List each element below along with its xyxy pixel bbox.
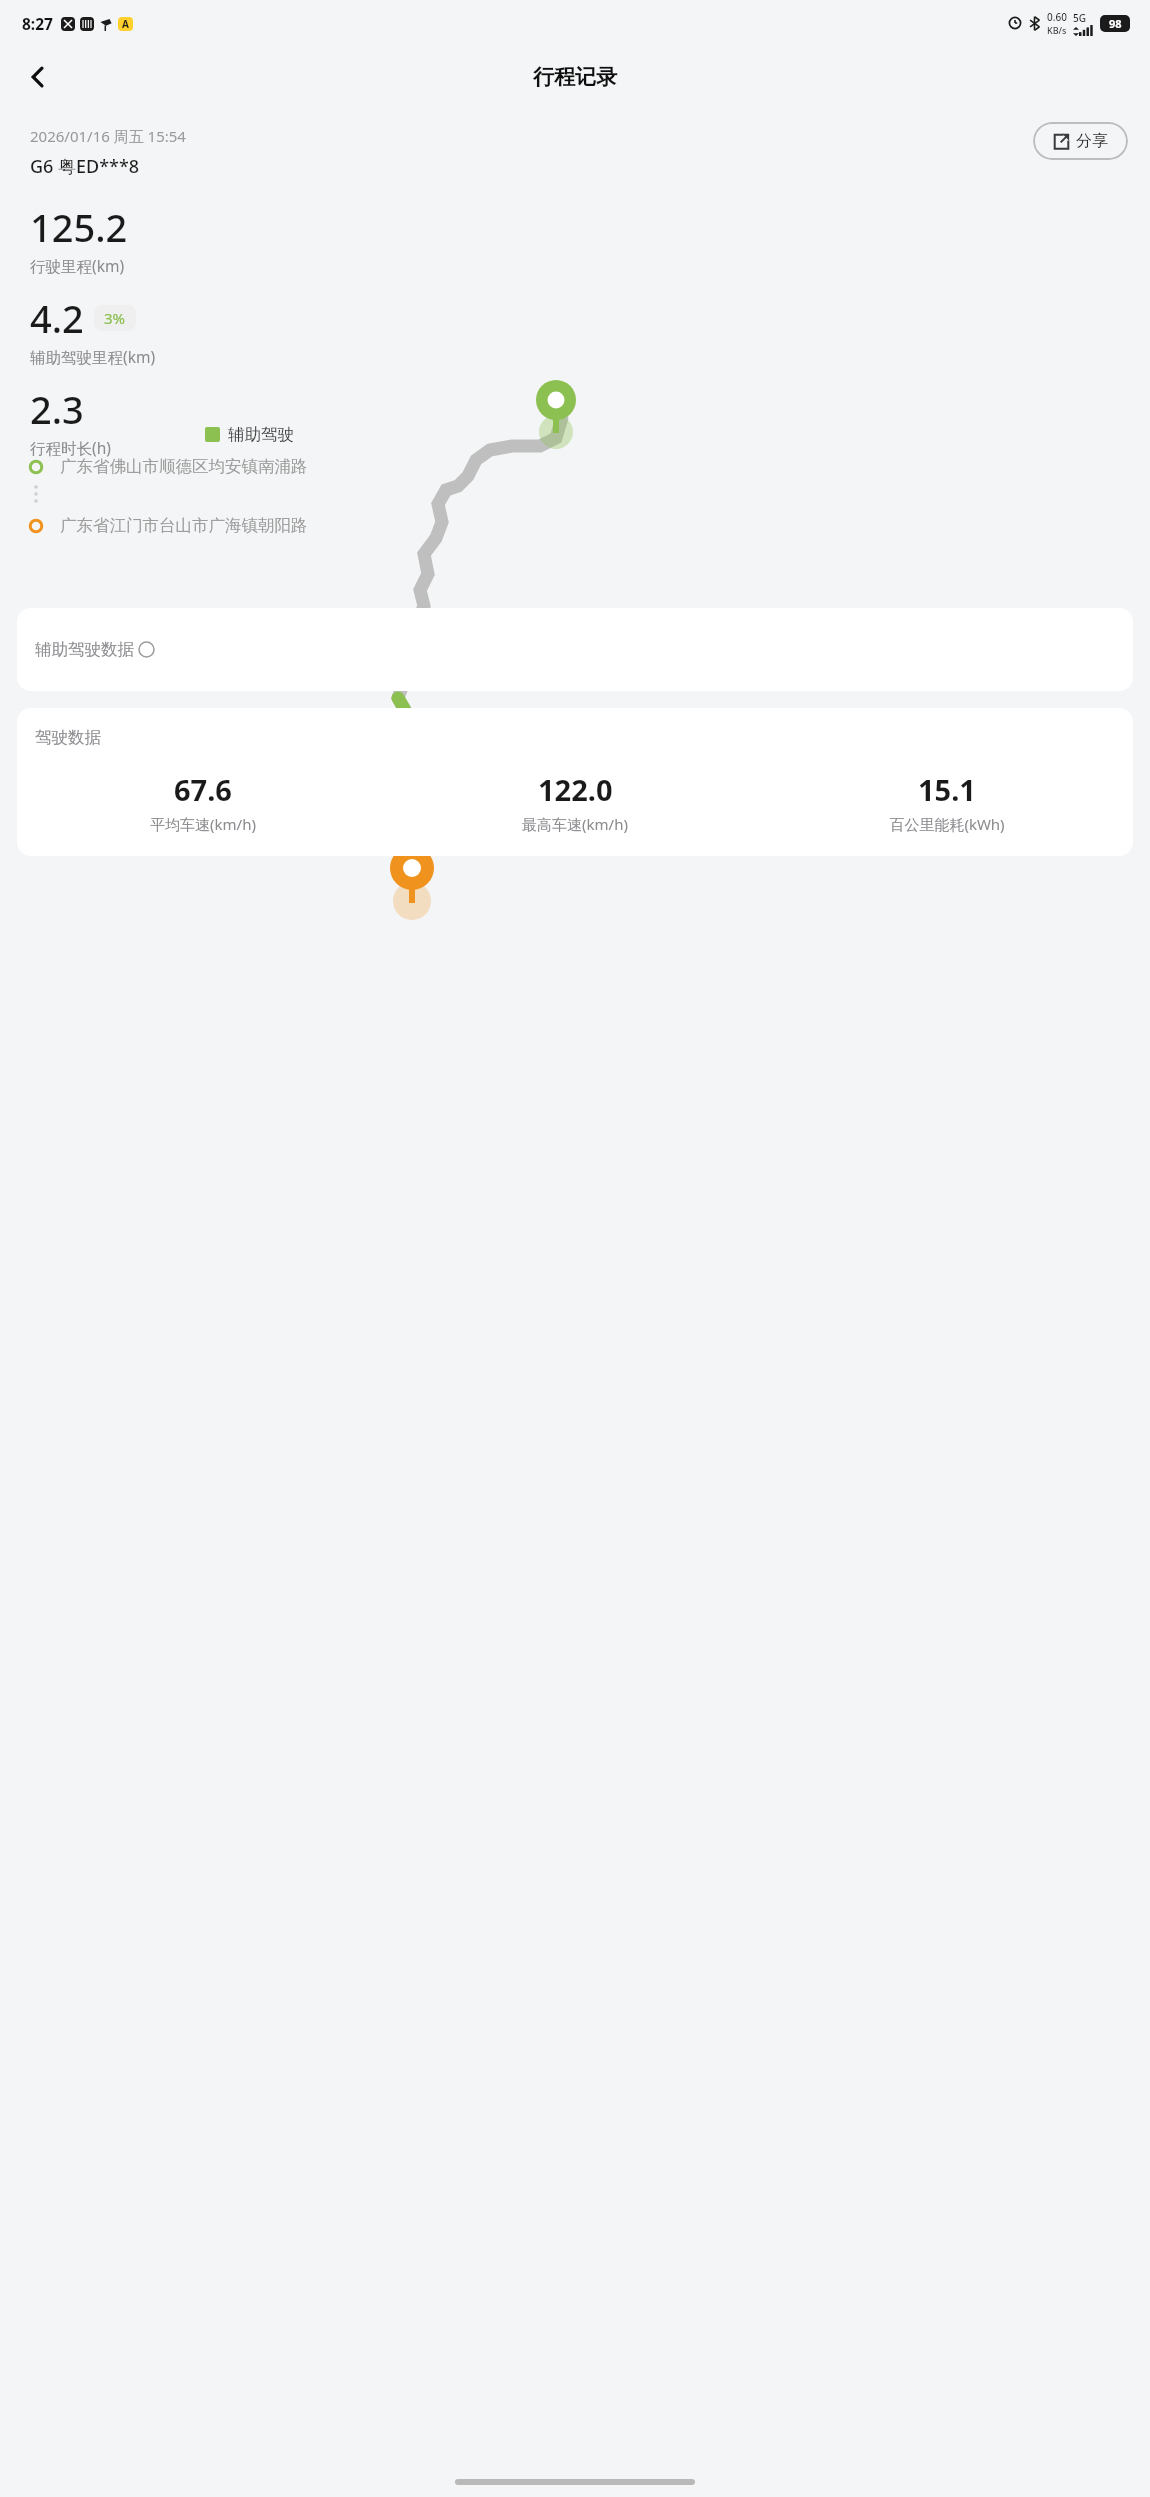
staticText: 2026/01/16 周五 15:54 xyxy=(30,126,186,146)
staticText: 驾驶数据 xyxy=(35,727,101,748)
button[interactable]: 分享 xyxy=(1033,122,1128,160)
staticText: 百公里能耗(kWh) xyxy=(889,814,1005,834)
staticText: 行程时长(h) xyxy=(30,437,111,458)
staticText: KB/s xyxy=(1047,24,1067,36)
staticText: A xyxy=(122,17,129,31)
button[interactable]: 辅助驾驶数据 xyxy=(17,608,1133,691)
staticText: 2.3 xyxy=(30,383,84,435)
staticText: 最高车速(km/h) xyxy=(522,814,628,834)
button[interactable]: 驾驶数据 xyxy=(17,708,1133,856)
staticText: 辅助驾驶数据 xyxy=(35,639,134,660)
staticText: 67.6 xyxy=(174,770,232,809)
staticText: 行程记录 xyxy=(533,64,617,90)
staticText: 广东省佛山市顺德区均安镇南浦路 xyxy=(60,456,308,477)
button[interactable]: Back xyxy=(14,53,62,101)
staticText: 辅助驾驶 xyxy=(228,424,294,445)
staticText: 行驶里程(km) xyxy=(30,255,125,276)
staticText: 5G xyxy=(1073,11,1086,25)
staticText: 15.1 xyxy=(918,770,976,809)
staticText: 分享 xyxy=(1076,131,1108,151)
staticText: 0.60 xyxy=(1047,10,1067,24)
staticText: 8:27 xyxy=(22,13,53,34)
staticText: 122.0 xyxy=(538,770,613,809)
staticText: 3% xyxy=(104,308,126,328)
staticText: 平均车速(km/h) xyxy=(150,814,256,834)
staticText: 98 xyxy=(1109,16,1122,31)
staticText: G6 粤ED***8 xyxy=(30,154,140,179)
staticText: 辅助驾驶里程(km) xyxy=(30,346,156,367)
staticText: 4.2 xyxy=(30,292,84,344)
staticText: 广东省江门市台山市广海镇朝阳路 xyxy=(60,515,308,536)
staticText: 125.2 xyxy=(30,201,128,253)
